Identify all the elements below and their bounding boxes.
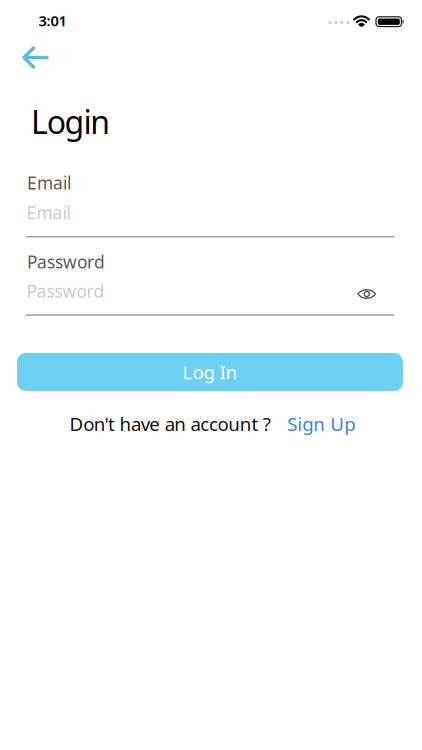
button[interactable]: Password [26,275,394,316]
staticText: Don't have an account ? [69,411,271,436]
staticText: Log In [182,360,237,384]
button[interactable]: Log In [17,353,403,391]
button[interactable]: Show password [349,276,385,312]
button[interactable]: Sign Up [287,411,355,436]
staticText: Email [26,201,70,224]
staticText: Sign Up [287,411,355,436]
button[interactable]: Back [13,35,57,79]
staticText: 3:01 [38,11,66,30]
staticText: Password [26,279,104,302]
staticText: Email [27,171,71,194]
staticText: Login [31,100,110,143]
staticText: Password [27,250,105,273]
button[interactable]: Email [26,197,394,237]
